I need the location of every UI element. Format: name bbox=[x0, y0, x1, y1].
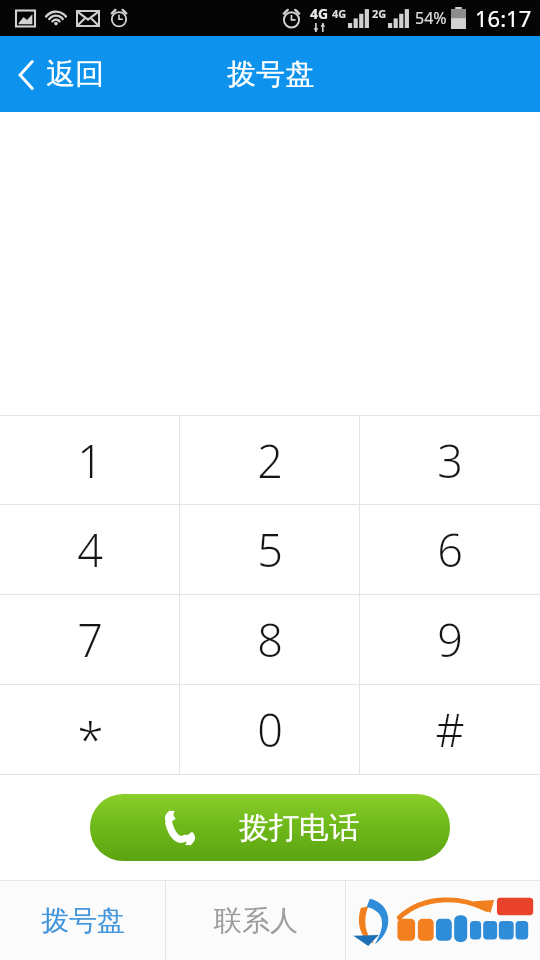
staticText: 拨号盘 bbox=[227, 56, 314, 93]
staticText: 54% bbox=[415, 7, 447, 29]
staticText: 6 bbox=[437, 519, 463, 580]
button[interactable]: 拨打电话 bbox=[90, 794, 450, 861]
staticText: 7 bbox=[77, 609, 103, 670]
staticText: 拨号盘 bbox=[41, 903, 125, 938]
button[interactable]: 9 bbox=[360, 595, 540, 684]
staticText: 2G bbox=[372, 6, 387, 21]
button[interactable]: 8 bbox=[180, 595, 360, 684]
staticText: 3 bbox=[437, 430, 463, 491]
staticText: 0 bbox=[257, 699, 283, 760]
staticText: 联系人 bbox=[214, 903, 298, 938]
button[interactable]: 6 bbox=[360, 505, 540, 594]
button[interactable]: 5 bbox=[180, 505, 360, 594]
staticText: 4G bbox=[310, 4, 329, 23]
staticText: 拨打电话 bbox=[239, 809, 359, 847]
staticText: 2 bbox=[257, 430, 283, 491]
button[interactable]: # bbox=[360, 685, 540, 774]
staticText: 16:17 bbox=[475, 3, 532, 33]
other: Back bbox=[18, 59, 35, 91]
staticText: 4 bbox=[77, 519, 103, 580]
staticText: 1 bbox=[77, 430, 103, 491]
staticText: 9 bbox=[437, 609, 463, 670]
button[interactable]: 3 bbox=[360, 416, 540, 504]
staticText: 8 bbox=[257, 609, 283, 670]
button[interactable]: Back bbox=[0, 46, 124, 103]
button[interactable]: 拨号盘 bbox=[0, 881, 165, 960]
button[interactable]: UZZF watermark bbox=[346, 881, 540, 960]
button[interactable]: 2 bbox=[180, 416, 360, 504]
button[interactable]: 0 bbox=[180, 685, 360, 774]
button[interactable]: * bbox=[0, 685, 180, 774]
staticText: 5 bbox=[257, 519, 283, 580]
button[interactable]: 联系人 bbox=[166, 881, 345, 960]
button[interactable]: 7 bbox=[0, 595, 180, 684]
button[interactable]: 1 bbox=[0, 416, 180, 504]
staticText: # bbox=[435, 699, 465, 760]
staticText: 4G bbox=[332, 6, 347, 21]
button[interactable]: 4 bbox=[0, 505, 180, 594]
staticText: * bbox=[77, 706, 104, 771]
staticText: 返回 bbox=[46, 56, 104, 93]
